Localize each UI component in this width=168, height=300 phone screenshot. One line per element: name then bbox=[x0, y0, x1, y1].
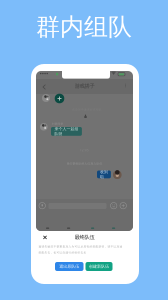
staticText: 小明同学 bbox=[51, 122, 63, 125]
staticText: 搭配失去，也可以自建行的组织去名 bbox=[38, 251, 86, 254]
staticText: 最终队伍 bbox=[74, 234, 94, 240]
button[interactable]: 添加队友 bbox=[53, 92, 65, 104]
button[interactable]: 返回 bbox=[40, 82, 48, 92]
staticText: 游戏搭子 bbox=[74, 83, 94, 89]
button[interactable]: 创建新队伍 bbox=[85, 262, 112, 271]
staticText: 群内组队 bbox=[36, 12, 132, 42]
staticText: 我们要组队的人已加入队伍 bbox=[66, 162, 102, 165]
button[interactable]: 退出原队伍 bbox=[55, 262, 83, 271]
staticText: 退出原队伍 bbox=[59, 264, 79, 269]
staticText: 邀请失败前不要重复加入为可以从原有的搭配获得，请不以加速 bbox=[38, 245, 122, 248]
button[interactable]: 关闭 bbox=[40, 233, 50, 242]
staticText: 来个人一起组队呀 bbox=[54, 126, 78, 136]
staticText: 收到啦 bbox=[100, 169, 108, 179]
staticText: 创建新队伍 bbox=[89, 264, 109, 269]
